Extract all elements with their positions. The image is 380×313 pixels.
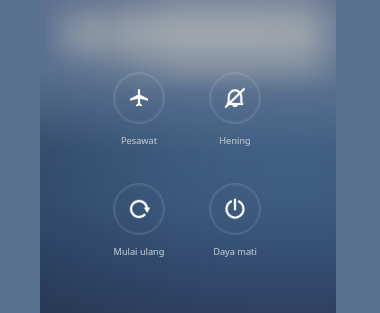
button[interactable]: Pesawat bbox=[94, 72, 184, 147]
button[interactable]: Daya mati bbox=[190, 183, 280, 258]
button[interactable]: Mulai ulang bbox=[94, 183, 184, 258]
staticText: Daya mati bbox=[190, 245, 280, 258]
staticText: Pesawat bbox=[94, 134, 184, 147]
staticText: Mulai ulang bbox=[94, 245, 184, 258]
staticText: Hening bbox=[190, 134, 280, 147]
button[interactable]: Hening bbox=[190, 72, 280, 147]
